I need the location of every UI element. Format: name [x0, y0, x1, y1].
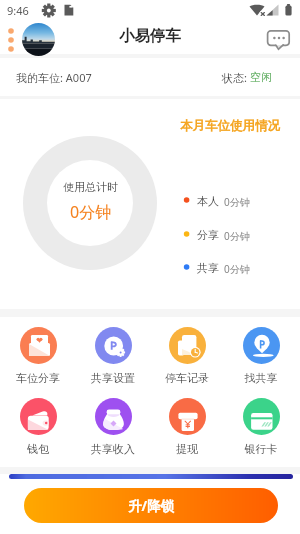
button[interactable]: 共享收入: [83, 398, 143, 456]
button[interactable]: 钱包: [8, 398, 68, 456]
button[interactable]: 共享设置: [83, 327, 143, 385]
staticText: 共享: [197, 261, 219, 275]
staticText: 0分钟: [224, 195, 250, 209]
staticText: 找共享: [231, 371, 291, 385]
staticText: 9:46: [7, 3, 29, 18]
button[interactable]: 停车记录: [157, 327, 217, 385]
button[interactable]: Messages: [265, 28, 291, 50]
staticText: 0分钟: [70, 201, 112, 223]
button[interactable]: 升/降锁: [24, 488, 278, 523]
staticText: 空闲: [250, 70, 272, 84]
staticText: 升/降锁: [128, 497, 175, 515]
staticText: 分享: [197, 228, 219, 242]
staticText: 提现: [157, 442, 217, 456]
staticText: 使用总计时: [63, 180, 118, 194]
staticText: 车位分享: [8, 371, 68, 385]
button[interactable]: Profile: [22, 23, 55, 56]
staticText: 0分钟: [224, 229, 250, 243]
button[interactable]: 提现: [157, 398, 217, 456]
button[interactable]: 车位分享: [8, 327, 68, 385]
staticText: 我的车位: A007: [16, 70, 92, 85]
button[interactable]: Menu: [4, 25, 19, 51]
staticText: 停车记录: [157, 371, 217, 385]
staticText: 0分钟: [224, 262, 250, 276]
staticText: 共享设置: [83, 371, 143, 385]
staticText: 状态:: [222, 70, 250, 85]
staticText: 共享收入: [83, 442, 143, 456]
staticText: 小易停车: [119, 26, 181, 46]
staticText: 本人: [197, 194, 219, 208]
staticText: 钱包: [8, 442, 68, 456]
staticText: 本月车位使用情况: [180, 118, 280, 134]
button[interactable]: 银行卡: [231, 398, 291, 456]
button[interactable]: 找共享: [231, 327, 291, 385]
staticText: 银行卡: [231, 442, 291, 456]
